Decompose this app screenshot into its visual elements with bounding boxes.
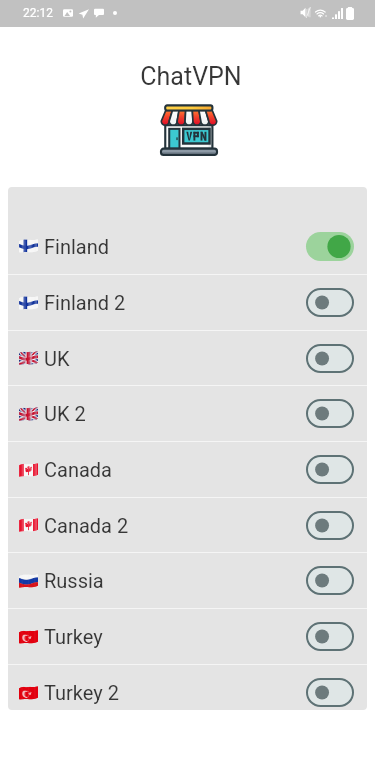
staticText: Finland 2 — [44, 291, 126, 314]
button[interactable]: Disconnect — [306, 232, 354, 261]
button[interactable]: Connect — [306, 344, 354, 373]
button[interactable]: Connect — [306, 622, 354, 651]
button[interactable]: UK — [8, 331, 367, 385]
staticText: ChatVPN — [140, 62, 242, 91]
button[interactable]: Turkey — [8, 609, 367, 664]
staticText: UK 2 — [44, 402, 86, 425]
staticText: Turkey 2 — [44, 681, 119, 704]
button[interactable]: Finland — [8, 218, 367, 274]
staticText: Canada — [44, 458, 112, 481]
button[interactable]: Canada — [8, 442, 367, 497]
staticText: UK — [44, 347, 70, 370]
button[interactable]: Canada 2 — [8, 498, 367, 552]
button[interactable]: Connect — [306, 566, 354, 595]
staticText: Finland — [44, 235, 110, 258]
button[interactable]: Connect — [306, 511, 354, 540]
staticText: 22:12 — [23, 6, 53, 20]
button[interactable]: Russia — [8, 553, 367, 608]
button[interactable]: Turkey 2 — [8, 665, 367, 710]
button[interactable]: Connect — [306, 399, 354, 428]
button[interactable]: Connect — [306, 455, 354, 484]
staticText: Canada 2 — [44, 514, 129, 537]
staticText: Turkey — [44, 625, 103, 648]
button[interactable]: UK 2 — [8, 386, 367, 441]
button[interactable]: Connect — [306, 288, 354, 317]
button[interactable]: Connect — [306, 678, 354, 707]
staticText: Russia — [44, 569, 104, 592]
button[interactable]: Finland 2 — [8, 275, 367, 330]
